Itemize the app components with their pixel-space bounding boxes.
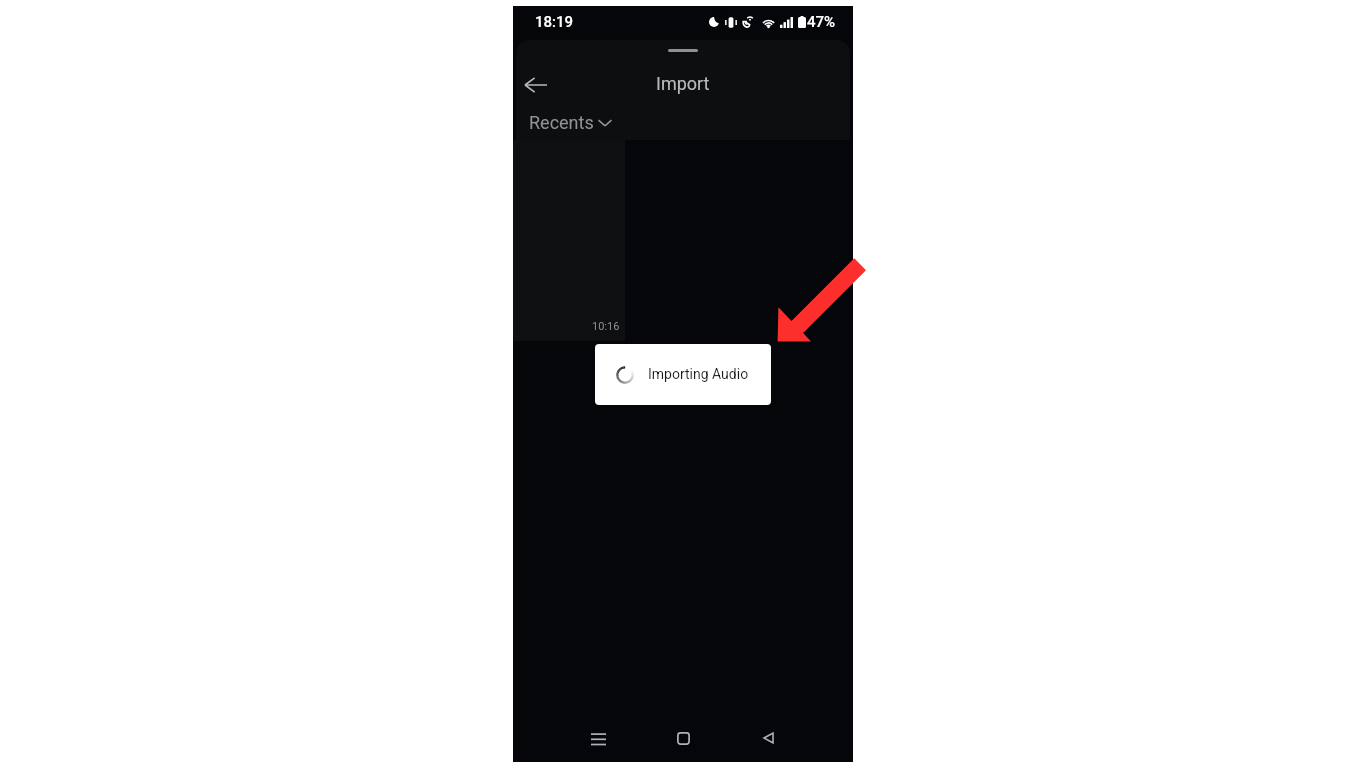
button[interactable]: Back — [746, 716, 790, 760]
staticText: Recents — [529, 112, 594, 133]
staticText: 10:16 — [592, 320, 620, 333]
button[interactable]: Recent apps — [576, 716, 620, 760]
button[interactable]: 10:16 — [513, 140, 625, 341]
staticText: 47% — [807, 13, 836, 31]
staticText: 18:19 — [535, 13, 574, 31]
staticText: Import — [656, 73, 710, 94]
button[interactable]: Home — [661, 716, 705, 760]
button[interactable]: Back — [522, 71, 550, 99]
staticText: Importing Audio — [648, 366, 749, 382]
button[interactable]: Recents — [529, 112, 612, 133]
